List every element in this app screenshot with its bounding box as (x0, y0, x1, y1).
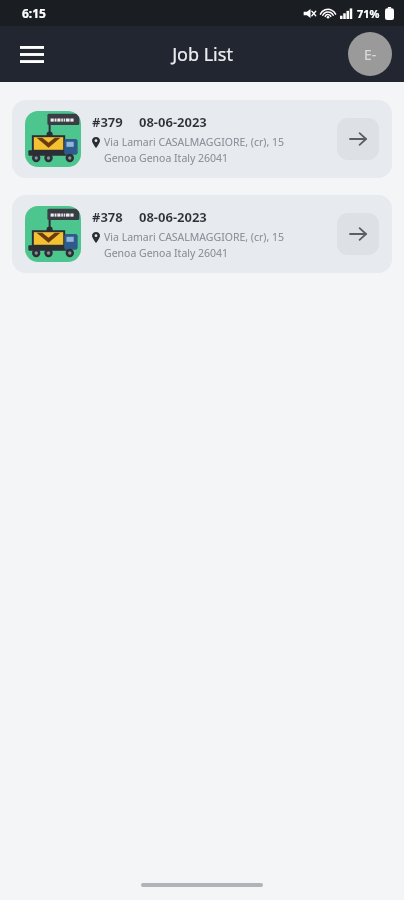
button[interactable]: Account (348, 32, 392, 76)
staticText: Genoa Genoa Italy 26041 (104, 151, 229, 165)
staticText: #379 (92, 113, 123, 131)
staticText: 08-06-2023 (139, 113, 207, 131)
staticText: 71% (357, 6, 380, 21)
button[interactable]: #379 (12, 100, 392, 178)
staticText: Via Lamari CASALMAGGIORE, (cr), 15 (104, 135, 285, 149)
staticText: Job List (172, 42, 233, 67)
button[interactable]: Open job details (337, 213, 379, 255)
staticText: 08-06-2023 (139, 208, 207, 226)
button[interactable]: Open navigation menu (10, 32, 54, 76)
button[interactable]: #378 (12, 195, 392, 273)
staticText: Via Lamari CASALMAGGIORE, (cr), 15 (104, 230, 285, 244)
button[interactable]: Open job details (337, 118, 379, 160)
staticText: Genoa Genoa Italy 26041 (104, 246, 229, 260)
staticText: #378 (92, 208, 123, 226)
staticText: 6:15 (22, 5, 46, 21)
staticText: E- (364, 45, 377, 64)
